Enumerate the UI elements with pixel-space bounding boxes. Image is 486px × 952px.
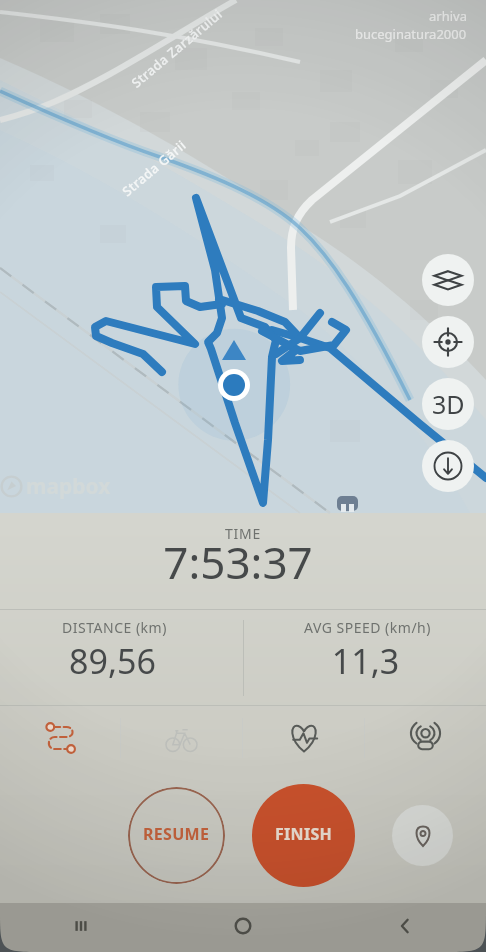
- staticText: AVG SPEED (km/h): [246, 618, 486, 637]
- staticText: 7:53:37: [0, 532, 481, 592]
- staticText: FINISH: [275, 823, 333, 845]
- button[interactable]: Route: [0, 706, 120, 770]
- button[interactable]: Add waypoint: [392, 805, 453, 866]
- button[interactable]: My location: [422, 316, 474, 368]
- staticText: mapbox: [26, 472, 111, 501]
- button[interactable]: FINISH: [252, 784, 355, 887]
- staticText: 11,3: [244, 638, 486, 684]
- staticText: 89,56: [0, 638, 234, 684]
- button[interactable]: Map layers: [422, 254, 474, 306]
- button[interactable]: Heart rate: [243, 706, 364, 770]
- staticText: 3D: [432, 387, 465, 421]
- button[interactable]: Live tracking: [365, 706, 486, 770]
- staticText: arhiva: [429, 7, 467, 25]
- button[interactable]: Download map: [422, 440, 474, 492]
- staticText: DISTANCE (km): [0, 618, 236, 637]
- button[interactable]: RESUME: [128, 787, 225, 884]
- button[interactable]: Recent apps: [0, 903, 162, 949]
- button[interactable]: Back: [324, 903, 486, 949]
- button[interactable]: 3D view: [422, 378, 474, 430]
- button[interactable]: Home: [162, 903, 324, 949]
- staticText: RESUME: [143, 823, 210, 845]
- staticText: buceginatura2000: [355, 25, 467, 43]
- staticText: TIME: [0, 524, 486, 543]
